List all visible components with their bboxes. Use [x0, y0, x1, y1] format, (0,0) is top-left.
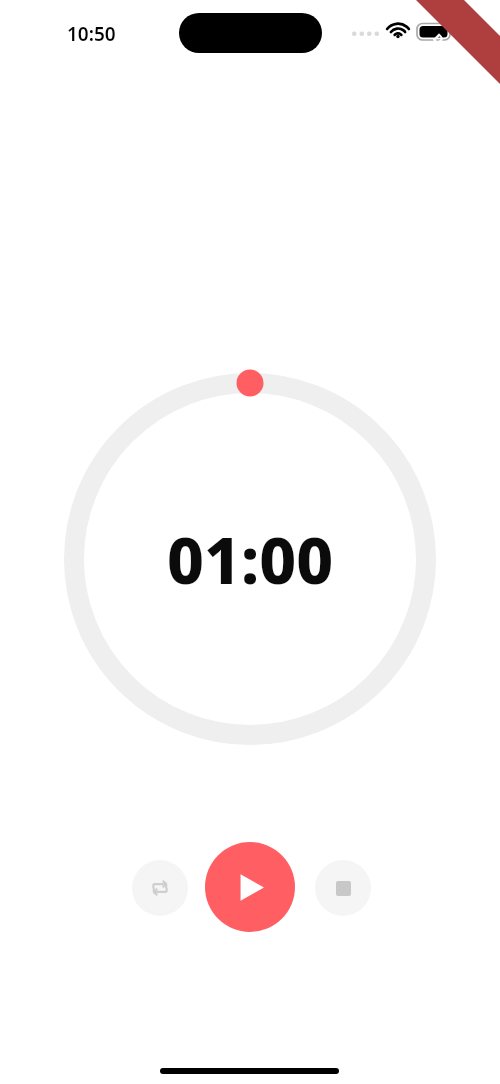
staticText: DEBUG	[430, 30, 475, 74]
button[interactable]: Repeat	[132, 860, 188, 916]
button[interactable]: Stop	[315, 860, 371, 916]
button[interactable]: Play	[205, 842, 295, 932]
staticText: 01:00	[167, 516, 334, 603]
staticText: 10:50	[67, 21, 116, 47]
